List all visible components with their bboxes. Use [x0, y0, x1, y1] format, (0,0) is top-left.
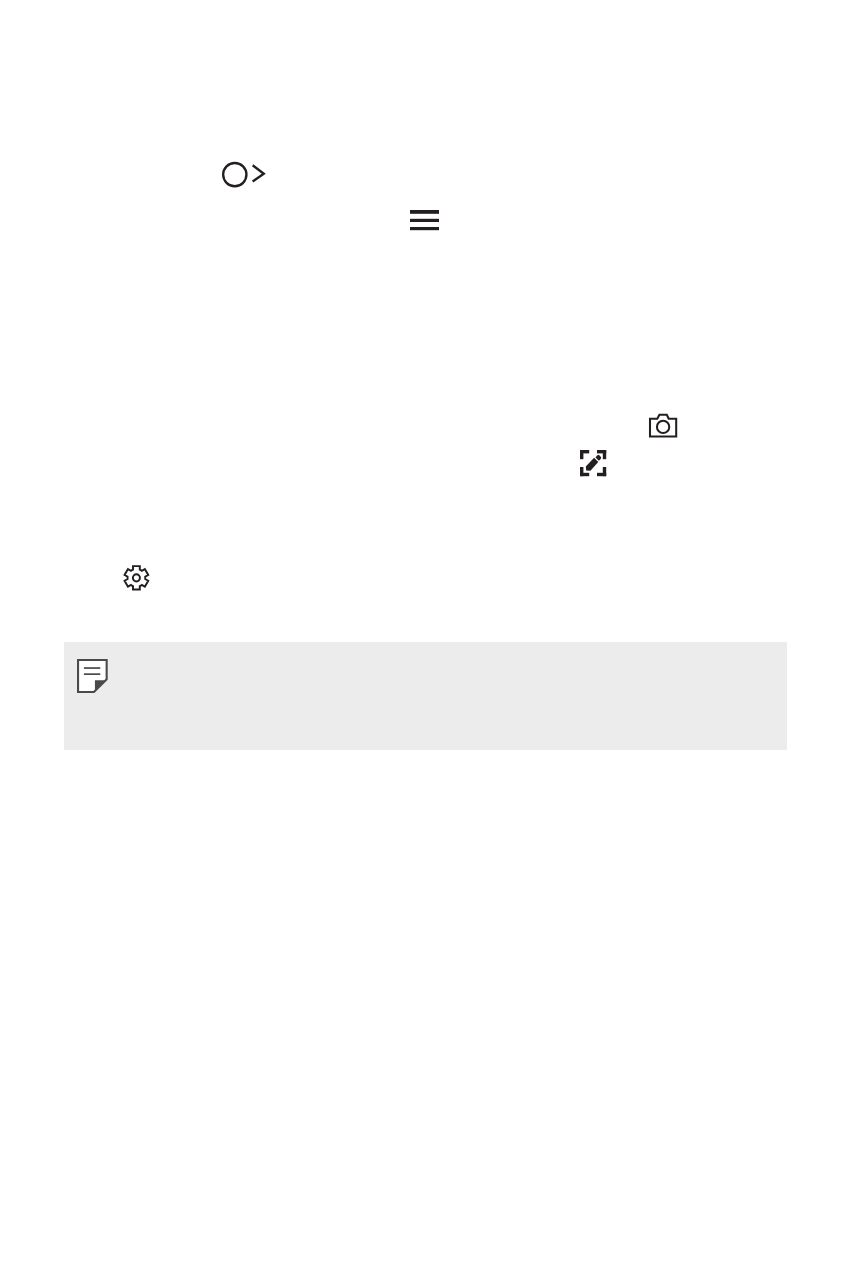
button[interactable]: Settings — [123, 564, 150, 591]
button[interactable]: Edit — [580, 450, 607, 477]
button[interactable]: Note — [64, 642, 787, 750]
button[interactable]: Menu — [409, 208, 440, 232]
button[interactable]: Camera — [648, 412, 678, 438]
button[interactable]: Continue — [221, 161, 265, 188]
